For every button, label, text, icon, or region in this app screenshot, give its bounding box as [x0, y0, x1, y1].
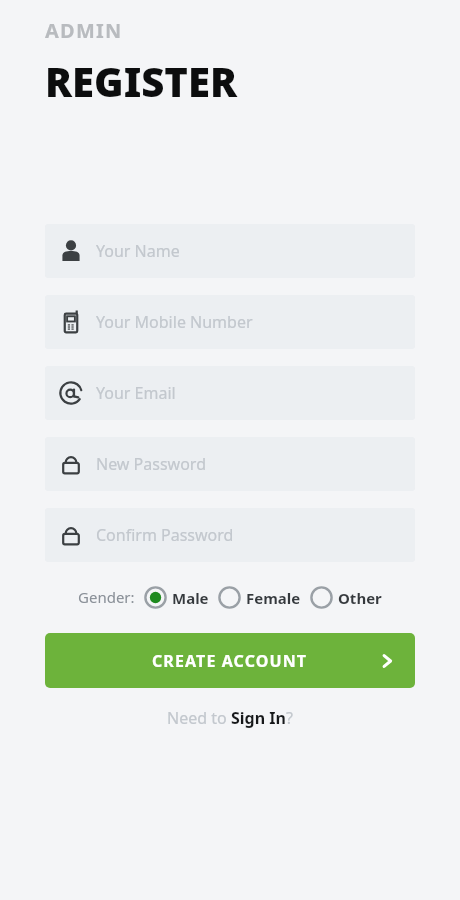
- staticText: Gender:: [78, 587, 135, 607]
- staticText: Your Mobile Number: [96, 311, 253, 333]
- staticText: Female: [246, 588, 301, 608]
- button[interactable]: Your Email: [45, 366, 415, 420]
- staticText: Confirm Password: [96, 524, 234, 546]
- staticText: Your Email: [96, 382, 176, 404]
- staticText: Male: [172, 588, 209, 608]
- staticText: ADMIN: [45, 17, 123, 44]
- staticText: ?: [286, 707, 293, 729]
- staticText: Other: [338, 588, 382, 608]
- button[interactable]: Your Name: [45, 224, 415, 278]
- button[interactable]: Your Mobile Number: [45, 295, 415, 349]
- staticText: Sign In: [231, 707, 286, 729]
- button[interactable]: Other: [310, 586, 382, 609]
- button[interactable]: New Password: [45, 437, 415, 491]
- staticText: Your Name: [96, 240, 180, 262]
- staticText: New Password: [96, 453, 206, 475]
- button[interactable]: Female: [218, 586, 301, 609]
- button[interactable]: Confirm Password: [45, 508, 415, 562]
- staticText: CREATE ACCOUNT: [152, 650, 308, 672]
- button[interactable]: Male: [144, 586, 209, 609]
- staticText: Need to: [167, 707, 231, 729]
- button[interactable]: CREATE ACCOUNT: [45, 633, 415, 688]
- button[interactable]: Sign In: [231, 707, 286, 729]
- staticText: REGISTER: [45, 54, 237, 108]
